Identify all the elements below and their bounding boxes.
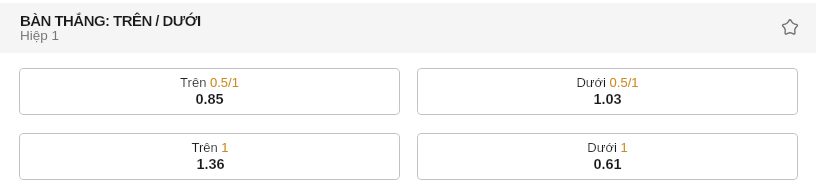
button[interactable]: Favourite: [772, 12, 804, 44]
button[interactable]: Trên 1: [19, 133, 400, 180]
staticText: Hiệp 1: [20, 28, 60, 43]
staticText: Dưới 1: [587, 140, 628, 155]
staticText: 1.03: [593, 91, 622, 107]
staticText: 0.61: [593, 156, 622, 172]
staticText: Dưới 0.5/1: [576, 75, 639, 90]
button[interactable]: Trên 0.5/1: [19, 68, 400, 115]
button[interactable]: BÀN THẮNG: TRÊN / DƯỚI: [0, 3, 816, 53]
staticText: Trên 0.5/1: [180, 75, 239, 90]
staticText: Trên 1: [191, 140, 229, 155]
button[interactable]: Dưới 0.5/1: [417, 68, 798, 115]
staticText: BÀN THẮNG: TRÊN / DƯỚI: [20, 12, 201, 29]
staticText: 1.36: [196, 156, 225, 172]
button[interactable]: Dưới 1: [417, 133, 798, 180]
staticText: 0.85: [195, 91, 224, 107]
